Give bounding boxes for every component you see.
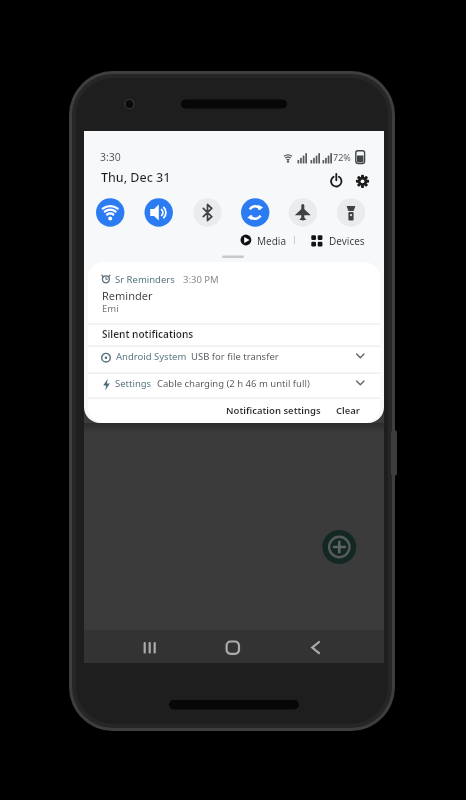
staticText: Devices — [329, 234, 365, 248]
button[interactable] — [145, 198, 173, 226]
staticText: Media — [257, 234, 287, 248]
staticText: Settings — [115, 377, 152, 390]
button[interactable] — [88, 373, 380, 397]
button[interactable] — [326, 398, 370, 423]
button[interactable] — [306, 230, 368, 250]
button[interactable] — [322, 530, 356, 564]
staticText: Thu, Dec 31 — [101, 169, 171, 186]
button[interactable] — [322, 168, 350, 195]
staticText: 3:30 PM — [183, 273, 219, 286]
button[interactable] — [302, 636, 332, 660]
staticText: Cable charging (2 h 46 m until full) — [157, 377, 310, 390]
button[interactable] — [337, 198, 365, 226]
staticText: 72% — [333, 151, 351, 163]
button[interactable] — [193, 198, 221, 226]
button[interactable] — [218, 636, 248, 660]
button[interactable] — [215, 398, 325, 423]
button[interactable] — [134, 636, 164, 660]
button[interactable] — [88, 346, 380, 372]
staticText: Clear — [336, 404, 360, 417]
button[interactable] — [88, 262, 380, 323]
staticText: 3:30 — [100, 150, 121, 164]
staticText: Notification settings — [226, 404, 321, 417]
staticText: Sr Reminders — [115, 273, 175, 286]
staticText: Reminder — [102, 288, 153, 303]
staticText: Silent notifications — [102, 327, 194, 341]
button[interactable] — [238, 230, 288, 250]
button[interactable] — [349, 168, 377, 195]
button[interactable] — [96, 198, 124, 226]
staticText: USB for file transfer — [191, 350, 279, 363]
staticText: Emi — [102, 302, 119, 315]
button[interactable] — [241, 198, 269, 226]
staticText: Android System — [116, 350, 187, 363]
button[interactable] — [289, 198, 317, 226]
